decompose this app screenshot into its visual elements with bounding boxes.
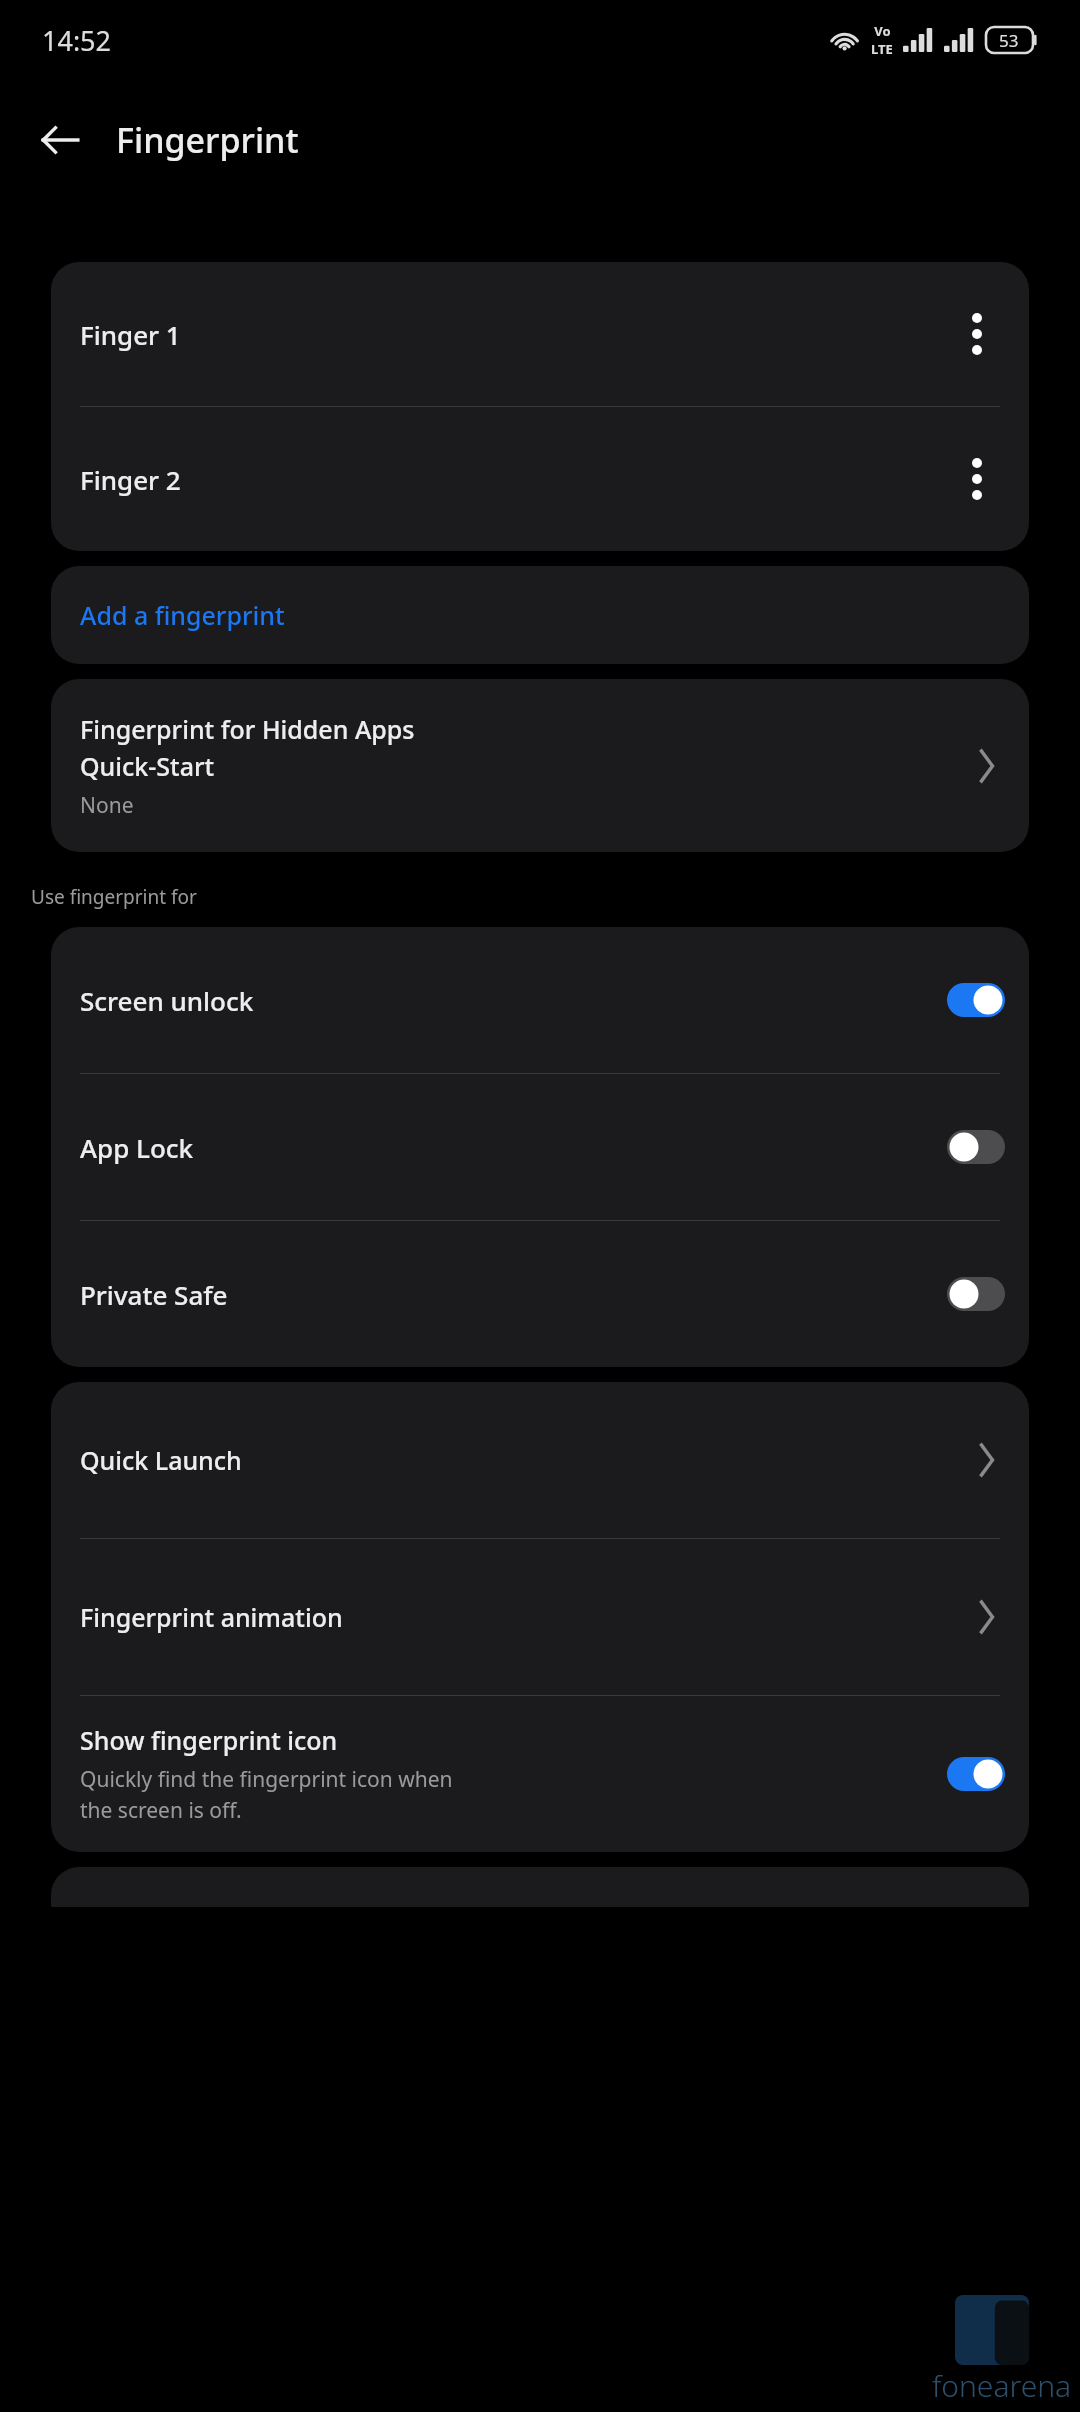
staticText: 14:52 bbox=[42, 22, 112, 59]
staticText: 53 bbox=[999, 29, 1019, 52]
staticText: App Lock bbox=[80, 1130, 194, 1165]
button[interactable]: On bbox=[947, 1757, 1005, 1791]
staticText: Quick-Start bbox=[80, 749, 215, 783]
staticText: Add a fingerprint bbox=[80, 598, 285, 632]
button[interactable]: Screen unlock bbox=[51, 927, 1029, 1073]
staticText: Fingerprint animation bbox=[80, 1600, 343, 1634]
button[interactable]: App Lock bbox=[51, 1074, 1029, 1220]
button[interactable]: Off bbox=[947, 1277, 1005, 1311]
staticText: Use fingerprint for bbox=[31, 884, 197, 910]
staticText: Vo bbox=[874, 22, 891, 40]
button[interactable]: Finger 2 bbox=[51, 407, 1029, 551]
staticText: Fingerprint for Hidden Apps bbox=[80, 712, 415, 746]
button[interactable]: Add a fingerprint bbox=[51, 566, 1029, 664]
staticText: Quick Launch bbox=[80, 1443, 242, 1477]
button[interactable]: More options bbox=[949, 306, 1005, 362]
button[interactable]: Finger 1 bbox=[51, 262, 1029, 406]
staticText: the screen is off. bbox=[80, 1796, 242, 1825]
staticText: Show fingerprint icon bbox=[80, 1723, 338, 1757]
button[interactable]: On bbox=[947, 983, 1005, 1017]
staticText: Finger 2 bbox=[80, 462, 181, 497]
button[interactable]: Fingerprint animation bbox=[51, 1539, 1029, 1695]
button[interactable]: Fingerprint for Hidden Apps bbox=[51, 679, 1029, 852]
button[interactable]: Show fingerprint icon bbox=[51, 1696, 1029, 1852]
staticText: Screen unlock bbox=[80, 983, 254, 1018]
staticText: Fingerprint bbox=[116, 117, 299, 163]
button[interactable]: Quick Launch bbox=[51, 1382, 1029, 1538]
button[interactable]: More options bbox=[949, 451, 1005, 507]
staticText: Finger 1 bbox=[80, 317, 181, 352]
staticText: fonearena bbox=[932, 2365, 1072, 2406]
staticText: LTE bbox=[871, 40, 893, 58]
button[interactable]: Back bbox=[28, 108, 92, 172]
button[interactable]: Off bbox=[947, 1130, 1005, 1164]
staticText: Private Safe bbox=[80, 1277, 228, 1312]
staticText: Quickly find the fingerprint icon when bbox=[80, 1765, 453, 1794]
staticText: None bbox=[80, 791, 134, 820]
button[interactable]: Private Safe bbox=[51, 1221, 1029, 1367]
